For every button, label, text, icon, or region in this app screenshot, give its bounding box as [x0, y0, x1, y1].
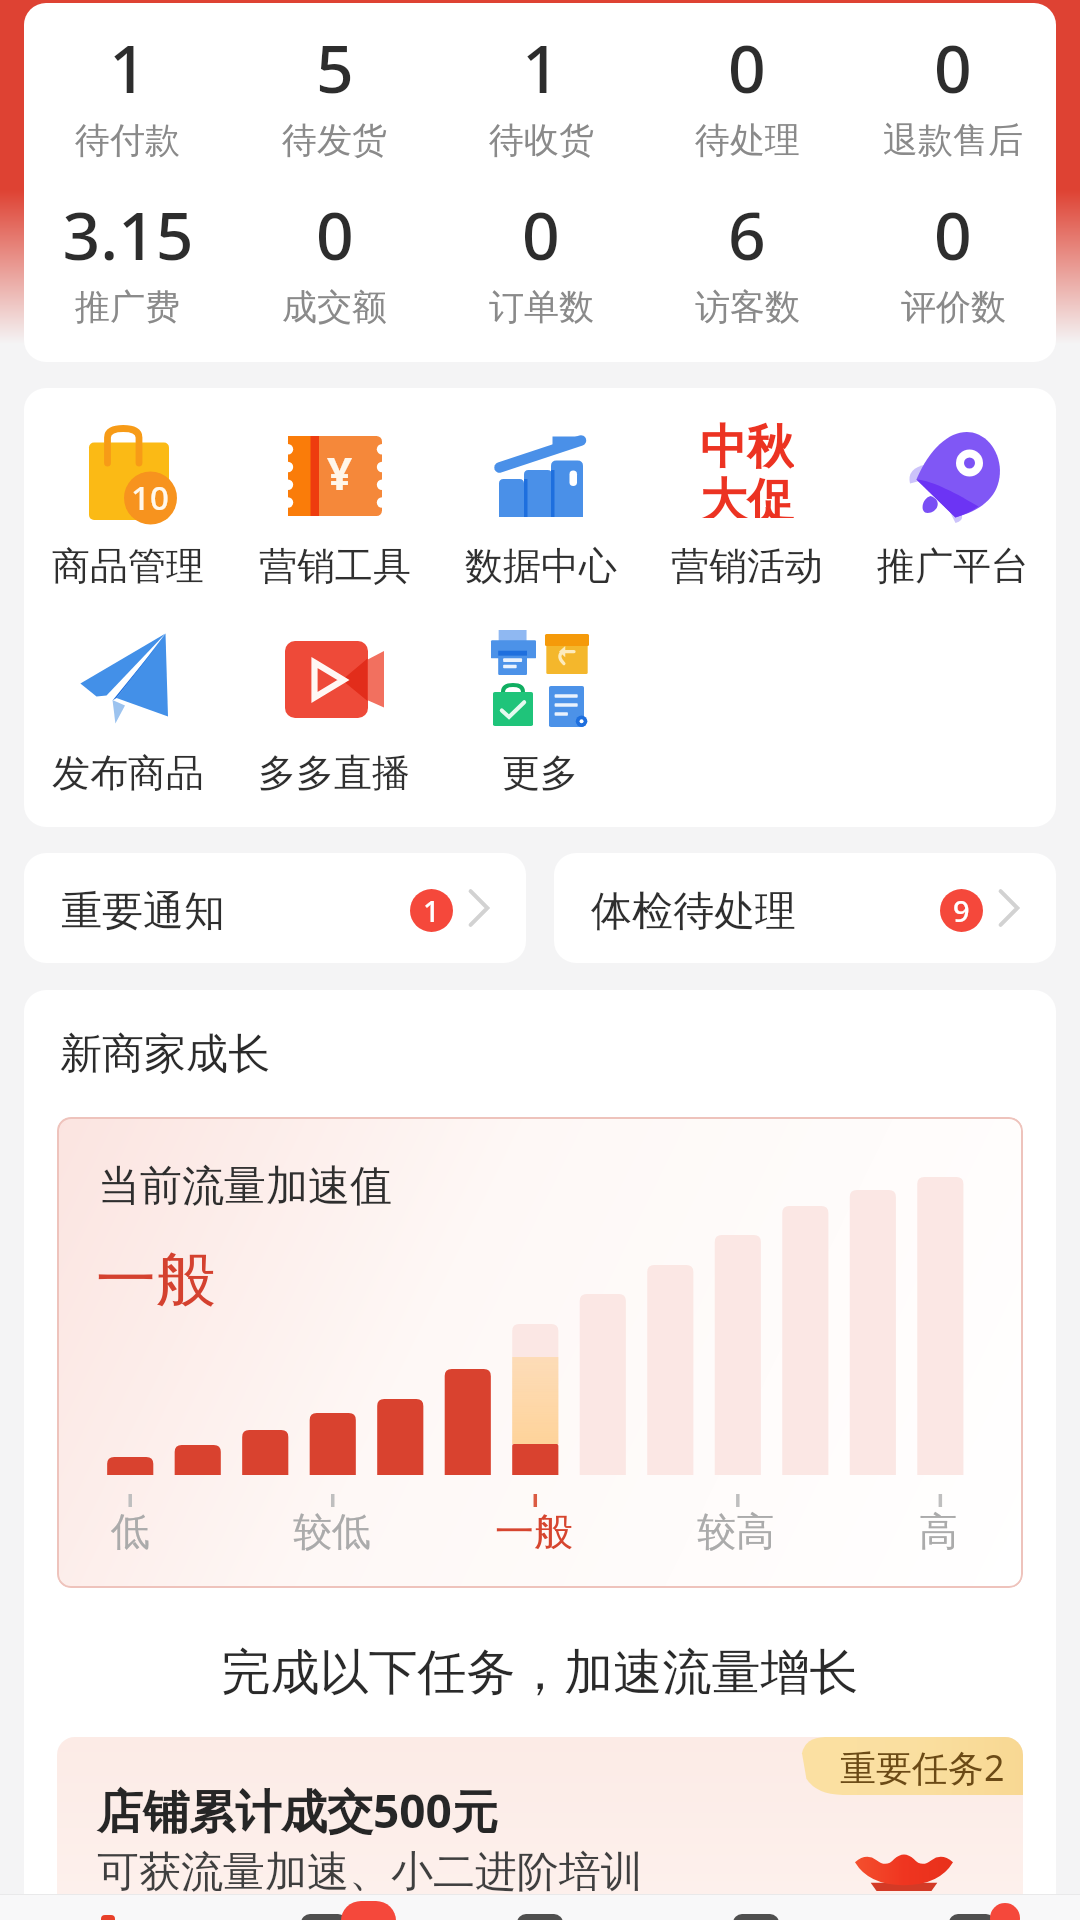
staticText: 1: [522, 22, 560, 112]
button[interactable]: 我的: [864, 1895, 1080, 1920]
staticText: 0: [934, 189, 972, 279]
button[interactable]: 多多直播: [231, 630, 437, 797]
button[interactable]: 0: [850, 189, 1056, 329]
staticText: 营销活动: [671, 542, 823, 590]
button[interactable]: 0: [850, 22, 1056, 162]
button[interactable]: 3.15: [24, 189, 231, 329]
staticText: 一般: [96, 1242, 216, 1318]
button[interactable]: 5: [231, 22, 438, 162]
staticText: 退款售后: [883, 118, 1023, 162]
staticText: 重要通知: [61, 886, 225, 938]
button[interactable]: 重要通知: [24, 853, 526, 963]
staticText: 低: [111, 1507, 150, 1553]
staticText: 一般: [495, 1507, 573, 1553]
staticText: 0: [316, 189, 354, 279]
staticText: 店铺累计成交500元: [97, 1779, 498, 1842]
staticText: 待付款: [75, 118, 180, 162]
staticText: 多多直播: [258, 749, 410, 797]
button[interactable]: 10: [24, 423, 231, 590]
staticText: 中秋 大促: [700, 418, 794, 518]
staticText: 新商家成长: [60, 1028, 270, 1081]
staticText: 可获流量加速、小二进阶培训: [97, 1846, 643, 1899]
button[interactable]: 中秋 大促: [644, 423, 850, 590]
staticText: 1: [423, 891, 440, 930]
staticText: 待处理: [695, 118, 800, 162]
staticText: 成交额: [282, 285, 387, 329]
staticText: 当前流量加速值: [98, 1160, 392, 1213]
button[interactable]: 消息: [216, 1895, 432, 1920]
staticText: 1: [109, 22, 147, 112]
staticText: 待发货: [282, 118, 387, 162]
staticText: 评价数: [901, 285, 1006, 329]
staticText: 待收货: [489, 118, 594, 162]
staticText: 营销工具: [259, 542, 411, 590]
staticText: 数据中心: [465, 542, 617, 590]
staticText: 高: [919, 1507, 958, 1553]
staticText: 较高: [697, 1507, 775, 1553]
staticText: 订单数: [489, 285, 594, 329]
staticText: 体检待处理: [591, 886, 796, 938]
staticText: 0: [728, 22, 766, 112]
button[interactable]: 更多: [437, 630, 643, 797]
button[interactable]: 数据中心: [438, 423, 644, 590]
staticText: 完成以下任务，加速流量增长: [24, 1642, 1056, 1704]
staticText: 发布商品: [52, 749, 204, 797]
button[interactable]: 1: [24, 22, 231, 162]
button[interactable]: ¥: [231, 423, 438, 590]
button[interactable]: 首页: [0, 1895, 216, 1920]
button[interactable]: 0: [231, 189, 438, 329]
staticText: 5: [316, 22, 354, 112]
staticText: 3.15: [62, 189, 194, 279]
staticText: ¥: [327, 443, 353, 503]
staticText: 推广平台: [877, 542, 1029, 590]
staticText: 商品管理: [52, 542, 204, 590]
staticText: 重要任务2: [840, 1743, 1005, 1792]
button[interactable]: 重要任务2: [57, 1737, 1023, 1920]
staticText: 10: [131, 475, 169, 520]
button[interactable]: 体检待处理: [554, 853, 1056, 963]
button[interactable]: 商品: [432, 1895, 648, 1920]
staticText: 访客数: [695, 285, 800, 329]
staticText: 6: [728, 189, 766, 279]
staticText: 更多: [502, 749, 578, 797]
button[interactable]: 0: [438, 189, 644, 329]
staticText: 0: [934, 22, 972, 112]
staticText: 推广费: [75, 285, 180, 329]
staticText: 0: [522, 189, 560, 279]
button[interactable]: 订单: [648, 1895, 864, 1920]
button[interactable]: 当前流量加速值: [57, 1117, 1023, 1588]
button[interactable]: 发布商品: [24, 630, 231, 797]
staticText: 9: [953, 891, 970, 930]
button[interactable]: 1: [438, 22, 644, 162]
staticText: 较低: [293, 1507, 371, 1553]
button[interactable]: 推广平台: [850, 423, 1056, 590]
button[interactable]: 0: [644, 22, 850, 162]
button[interactable]: 6: [644, 189, 850, 329]
